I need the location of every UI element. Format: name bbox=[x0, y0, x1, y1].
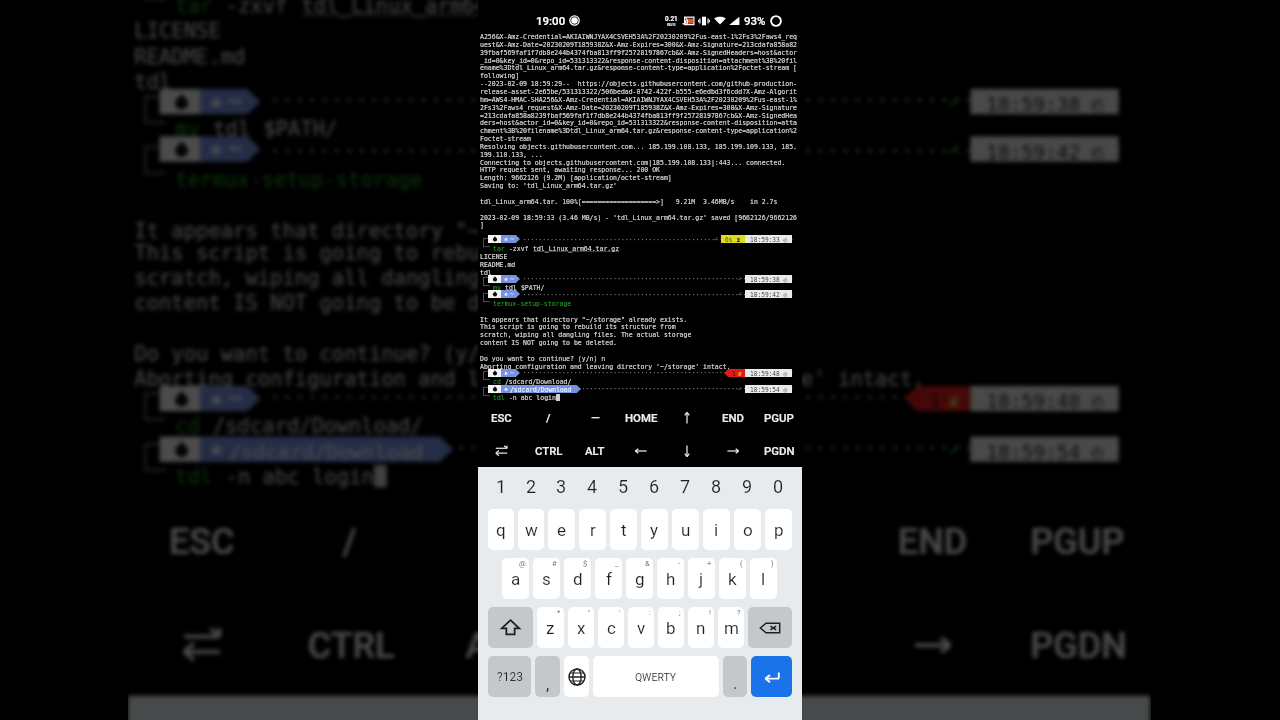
button[interactable]: 0 bbox=[1027, 696, 1125, 720]
button[interactable]: PGUP bbox=[756, 401, 802, 434]
button[interactable]: 3 bbox=[546, 467, 577, 505]
button[interactable]: w bbox=[518, 509, 544, 550]
staticText: uest&X-Amz-Date=20230209T185938Z&X-Amz-E… bbox=[480, 41, 797, 49]
button[interactable]: y bbox=[641, 509, 668, 550]
button[interactable]: 8 bbox=[701, 467, 732, 505]
staticText: k bbox=[728, 569, 737, 589]
button[interactable]: HOME bbox=[618, 401, 664, 434]
button[interactable]: Down bbox=[664, 434, 710, 467]
button[interactable]: — bbox=[425, 487, 570, 591]
button[interactable]: Change language bbox=[564, 656, 589, 697]
button[interactable]: 2 bbox=[516, 467, 546, 505]
staticText: -zxvf bbox=[213, 0, 301, 19]
button[interactable]: h bbox=[657, 558, 684, 599]
button[interactable]: 1 bbox=[486, 467, 516, 505]
button[interactable]: 5 bbox=[608, 467, 639, 505]
button[interactable]: 3 bbox=[342, 696, 440, 720]
button[interactable]: / bbox=[276, 487, 425, 591]
button[interactable]: PGDN bbox=[756, 434, 802, 467]
button[interactable]: 9 bbox=[929, 696, 1027, 720]
button[interactable]: HOME bbox=[570, 487, 715, 591]
staticText: 39fbaf569faf1f7db8e244b4374fba813ff9f257… bbox=[480, 49, 797, 57]
button[interactable]: PGUP bbox=[1005, 487, 1150, 591]
button[interactable]: j bbox=[688, 558, 715, 599]
button[interactable]: ALT bbox=[572, 434, 618, 467]
button[interactable]: n bbox=[688, 607, 714, 648]
button[interactable]: z bbox=[537, 607, 564, 648]
button[interactable]: 2 bbox=[248, 696, 342, 720]
staticText: o bbox=[743, 520, 753, 540]
staticText: ; bbox=[679, 608, 681, 617]
button[interactable]: 7 bbox=[734, 696, 832, 720]
button[interactable]: QWERTY bbox=[593, 656, 719, 697]
button[interactable]: ALT bbox=[425, 591, 570, 696]
button[interactable]: r bbox=[579, 509, 606, 550]
button[interactable]: ?123 bbox=[488, 656, 531, 697]
button[interactable]: END bbox=[710, 401, 756, 434]
button[interactable]: x bbox=[568, 607, 594, 648]
button[interactable]: g bbox=[626, 558, 653, 599]
button[interactable]: o bbox=[734, 509, 761, 550]
button[interactable]: i bbox=[703, 509, 730, 550]
button[interactable]: Left bbox=[618, 434, 664, 467]
button[interactable]: t bbox=[610, 509, 637, 550]
button[interactable]: Left bbox=[570, 591, 715, 696]
button[interactable]: 1 bbox=[153, 696, 248, 720]
staticText: content IS NOT going to be deleted. bbox=[134, 291, 566, 316]
button[interactable]: Right bbox=[710, 434, 756, 467]
button[interactable]: ESC bbox=[128, 487, 276, 591]
button[interactable]: , bbox=[535, 656, 560, 697]
staticText: ' bbox=[619, 608, 621, 617]
button[interactable]: s bbox=[533, 558, 560, 599]
button[interactable]: 8 bbox=[832, 696, 929, 720]
button[interactable]: 6 bbox=[639, 467, 670, 505]
staticText: / bbox=[546, 411, 551, 424]
button[interactable]: CTRL bbox=[525, 434, 572, 467]
button[interactable]: d bbox=[564, 558, 591, 599]
button[interactable]: 0 bbox=[763, 467, 794, 505]
button[interactable]: l bbox=[750, 558, 777, 599]
button[interactable]: Down bbox=[715, 591, 860, 696]
button[interactable]: k bbox=[719, 558, 746, 599]
button[interactable]: Shift bbox=[488, 607, 533, 648]
button[interactable]: Tab bbox=[128, 591, 276, 696]
staticText: g bbox=[635, 569, 645, 589]
button[interactable]: 7 bbox=[670, 467, 701, 505]
button[interactable]: ESC bbox=[478, 401, 525, 434]
button[interactable]: Backspace bbox=[748, 607, 792, 648]
button[interactable]: 4 bbox=[440, 696, 538, 720]
staticText: LICENSE bbox=[480, 253, 508, 261]
button[interactable]: Up bbox=[715, 487, 860, 591]
button[interactable]: Up bbox=[664, 401, 710, 434]
button[interactable]: 9 bbox=[732, 467, 763, 505]
button[interactable]: 4 bbox=[577, 467, 608, 505]
button[interactable]: PGDN bbox=[1005, 591, 1150, 696]
button[interactable]: f bbox=[595, 558, 622, 599]
button[interactable]: CTRL bbox=[276, 591, 425, 696]
button[interactable]: u bbox=[672, 509, 699, 550]
staticText: KB/S bbox=[667, 23, 676, 27]
staticText: ✓ bbox=[948, 89, 961, 114]
button[interactable]: — bbox=[572, 401, 618, 434]
button[interactable]: Tab bbox=[478, 434, 525, 467]
button[interactable]: . bbox=[723, 656, 747, 697]
button[interactable]: e bbox=[548, 509, 575, 550]
button[interactable]: m bbox=[718, 607, 744, 648]
staticText: f bbox=[606, 569, 612, 589]
button[interactable]: Right bbox=[860, 591, 1005, 696]
button[interactable]: Enter bbox=[751, 656, 792, 697]
button[interactable]: q bbox=[488, 509, 514, 550]
button[interactable]: c bbox=[598, 607, 624, 648]
button[interactable]: a bbox=[502, 558, 529, 599]
staticText: a bbox=[511, 569, 521, 589]
button[interactable]: 6 bbox=[636, 696, 734, 720]
button[interactable]: END bbox=[860, 487, 1005, 591]
button[interactable]: / bbox=[525, 401, 572, 434]
staticText: 1 bbox=[732, 370, 736, 377]
button[interactable]: b bbox=[658, 607, 684, 648]
staticText: y bbox=[650, 520, 659, 540]
button[interactable]: 5 bbox=[538, 696, 636, 720]
button[interactable]: v bbox=[628, 607, 654, 648]
button[interactable]: p bbox=[765, 509, 792, 550]
staticText: Do you want to continue? (y/n) n bbox=[134, 342, 532, 367]
